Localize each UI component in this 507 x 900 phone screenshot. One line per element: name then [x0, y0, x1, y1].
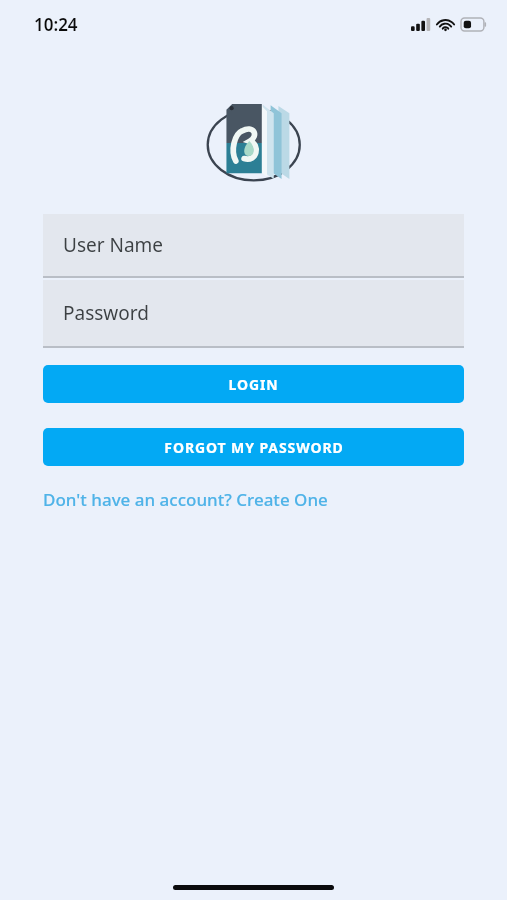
- button[interactable]: Password: [43, 280, 464, 346]
- staticText: 10:24: [34, 13, 78, 36]
- button[interactable]: User Name: [43, 214, 464, 276]
- button[interactable]: LOGIN: [43, 365, 464, 403]
- staticText: Don't have an account? Create One: [43, 488, 328, 511]
- button[interactable]: Don't have an account? Create One: [40, 484, 331, 515]
- staticText: LOGIN: [228, 375, 279, 394]
- button[interactable]: FORGOT MY PASSWORD: [43, 428, 464, 466]
- staticText: Password: [63, 300, 149, 326]
- staticText: FORGOT MY PASSWORD: [164, 438, 344, 457]
- staticText: User Name: [63, 232, 164, 258]
